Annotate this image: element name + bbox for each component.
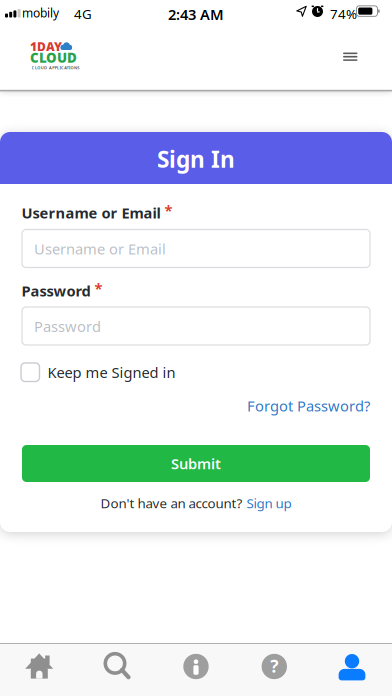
staticText: Keep me Signed in [47,362,175,382]
button[interactable]: Info [173,644,219,689]
staticText: 4G [74,5,92,23]
button[interactable]: Forgot Password? [247,396,370,415]
staticText: CLOUD APPLICATIONS [31,65,79,70]
staticText: Don't have an account? [100,494,242,512]
staticText: Username or Email [21,203,160,222]
button[interactable]: Keep me Signed in [21,362,175,382]
staticText: 2:43 AM [168,4,224,24]
staticText: Sign In [157,144,235,174]
staticText: Password [21,281,90,300]
button[interactable]: Help [252,644,297,689]
staticText: Password [34,316,101,336]
button[interactable]: Account [329,644,375,690]
button[interactable]: Search [95,644,140,688]
staticText: CLOUD [30,49,77,66]
staticText: * [164,200,172,220]
staticText: * [94,278,102,298]
staticText: Sign up [246,494,291,512]
button[interactable]: Sign up [246,494,291,512]
button[interactable]: Home [15,643,63,689]
staticText: Username or Email [34,239,166,258]
staticText: mobily [22,5,59,21]
staticText: 1DAY [30,39,62,54]
button[interactable]: Menu [337,46,363,67]
staticText: Forgot Password? [247,396,370,415]
button[interactable]: Submit [22,445,370,482]
staticText: 74% [330,5,357,23]
staticText: Submit [171,454,221,473]
staticText: ? [270,654,278,677]
